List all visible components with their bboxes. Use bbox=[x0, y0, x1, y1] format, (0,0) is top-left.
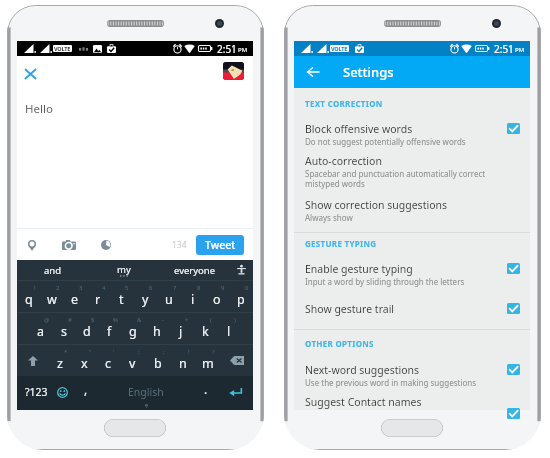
button[interactable]: Keyboard settings bbox=[230, 260, 253, 280]
button[interactable]: Next-word suggestions bbox=[294, 363, 530, 388]
button[interactable]: 0 bbox=[229, 281, 253, 312]
button[interactable]: ! bbox=[170, 345, 195, 376]
button[interactable]: and bbox=[17, 260, 88, 280]
button[interactable]: 2 bbox=[40, 281, 63, 312]
staticText: ' bbox=[113, 348, 115, 356]
button[interactable]: $ bbox=[75, 313, 98, 344]
staticText: $ bbox=[91, 316, 95, 324]
button[interactable]: % bbox=[98, 313, 121, 344]
button[interactable]: Close bbox=[19, 62, 42, 85]
staticText: b bbox=[154, 355, 162, 372]
button[interactable]: Enable gesture typing bbox=[294, 262, 530, 287]
staticText: 3 bbox=[79, 284, 83, 292]
staticText: m bbox=[202, 355, 214, 372]
staticText: , bbox=[84, 381, 88, 397]
button[interactable]: Shift bbox=[17, 345, 48, 376]
button[interactable]: , bbox=[75, 376, 97, 410]
staticText: h bbox=[153, 323, 161, 340]
staticText: a bbox=[37, 323, 45, 340]
button[interactable]: English bbox=[97, 376, 195, 410]
button[interactable]: 8 bbox=[181, 281, 205, 312]
staticText: w bbox=[47, 291, 57, 308]
button[interactable]: 4 bbox=[86, 281, 109, 312]
staticText: 2:51 bbox=[494, 42, 514, 56]
button[interactable]: Back bbox=[300, 59, 326, 85]
staticText: p bbox=[237, 291, 245, 308]
staticText: GESTURE TYPING bbox=[305, 238, 377, 249]
staticText: j bbox=[179, 323, 183, 340]
staticText: 1 bbox=[33, 284, 37, 292]
staticText: f bbox=[107, 323, 112, 340]
button[interactable]: Tweet bbox=[196, 235, 244, 255]
button[interactable]: Suggest Contact names bbox=[294, 395, 530, 409]
button[interactable]: & bbox=[121, 313, 145, 344]
button[interactable]: ?123 bbox=[17, 376, 56, 410]
button[interactable]: everyone bbox=[159, 260, 230, 280]
staticText: Enable gesture typing bbox=[305, 262, 413, 276]
button[interactable]: Enter bbox=[217, 376, 253, 410]
button[interactable]: my bbox=[88, 260, 159, 280]
staticText: : bbox=[138, 348, 140, 356]
button[interactable]: Emoji bbox=[50, 376, 74, 410]
button[interactable]: 1 bbox=[17, 281, 40, 312]
button[interactable]: @ bbox=[29, 313, 52, 344]
button[interactable]: ; bbox=[145, 345, 170, 376]
button[interactable]: 3 bbox=[63, 281, 86, 312]
staticText: 0 bbox=[245, 284, 249, 292]
staticText: ? bbox=[212, 348, 215, 356]
button[interactable]: Show correction suggestions bbox=[294, 198, 530, 223]
button[interactable]: . bbox=[195, 376, 217, 410]
staticText: everyone bbox=[174, 264, 216, 277]
button[interactable]: 9 bbox=[205, 281, 229, 312]
staticText: e bbox=[71, 291, 79, 308]
button[interactable]: Block offensive words bbox=[294, 122, 530, 147]
staticText: z bbox=[57, 355, 63, 372]
staticText: i bbox=[191, 291, 195, 308]
button[interactable]: Location bbox=[23, 235, 41, 255]
staticText: 8 bbox=[197, 284, 201, 292]
button[interactable]: 5 bbox=[109, 281, 133, 312]
button[interactable]: Poll bbox=[97, 235, 115, 255]
button[interactable]: Auto-correction bbox=[294, 154, 530, 190]
button[interactable]: ( bbox=[193, 313, 217, 344]
staticText: t bbox=[119, 291, 124, 308]
staticText: Use the previous word in making suggesti… bbox=[305, 377, 477, 388]
staticText: OTHER OPTIONS bbox=[305, 338, 374, 349]
staticText: ) bbox=[234, 316, 236, 324]
button[interactable]: : bbox=[120, 345, 145, 376]
staticText: 4 bbox=[102, 284, 106, 292]
staticText: Show correction suggestions bbox=[305, 198, 448, 212]
staticText: VOLTE bbox=[54, 45, 71, 52]
staticText: and bbox=[44, 264, 62, 277]
staticText: Auto-correction bbox=[305, 154, 382, 168]
staticText: ( bbox=[210, 316, 212, 324]
staticText: d bbox=[83, 323, 91, 340]
button[interactable]: 6 bbox=[133, 281, 157, 312]
button[interactable]: Profile bbox=[223, 62, 244, 80]
staticText: ! bbox=[188, 348, 190, 356]
button[interactable]: + bbox=[169, 313, 193, 344]
button[interactable]: ' bbox=[96, 345, 120, 376]
staticText: l bbox=[227, 323, 231, 340]
button[interactable]: Show gesture trail bbox=[294, 302, 530, 316]
button[interactable]: " bbox=[72, 345, 96, 376]
button[interactable]: ) bbox=[217, 313, 241, 344]
staticText: Suggest Contact names bbox=[305, 395, 422, 409]
button[interactable]: # bbox=[52, 313, 75, 344]
staticText: q bbox=[25, 291, 33, 308]
staticText: s bbox=[61, 323, 67, 340]
staticText: Block offensive words bbox=[305, 122, 413, 136]
button[interactable]: 7 bbox=[157, 281, 181, 312]
staticText: c bbox=[105, 355, 112, 372]
button[interactable]: Backspace bbox=[220, 345, 253, 376]
button[interactable]: ? bbox=[195, 345, 220, 376]
button[interactable]: Camera bbox=[59, 235, 79, 255]
staticText: PM bbox=[238, 46, 248, 54]
button[interactable]: * bbox=[48, 345, 72, 376]
staticText: r bbox=[95, 291, 101, 308]
staticText: ?123 bbox=[25, 385, 48, 399]
staticText: . bbox=[204, 381, 208, 397]
staticText: - bbox=[162, 316, 164, 324]
button[interactable]: - bbox=[145, 313, 169, 344]
staticText: + bbox=[185, 316, 189, 324]
